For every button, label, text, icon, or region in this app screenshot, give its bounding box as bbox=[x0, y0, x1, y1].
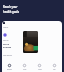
staticText: Stats bbox=[38, 68, 42, 70]
staticText: Today bbox=[3, 26, 9, 29]
button[interactable]: Home bbox=[2, 61, 17, 72]
button[interactable]: Plan bbox=[17, 61, 32, 72]
staticText: Reach your health goals bbox=[3, 5, 19, 13]
staticText: Plan bbox=[23, 68, 27, 70]
staticText: Me bbox=[53, 68, 56, 70]
staticText: See details bbox=[3, 54, 13, 56]
button[interactable]: Me bbox=[47, 61, 62, 72]
staticText: Get Fit bbox=[3, 39, 9, 41]
button[interactable]: Menu bbox=[3, 22, 5, 24]
button[interactable]: Stats bbox=[32, 61, 47, 72]
staticText: Home bbox=[7, 68, 12, 70]
button[interactable] bbox=[23, 31, 38, 53]
staticText: Drink Enough bbox=[3, 43, 12, 49]
